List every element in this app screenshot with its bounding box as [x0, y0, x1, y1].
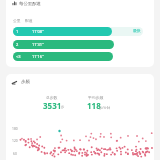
- staticText: 11'31": [32, 42, 44, 47]
- staticText: 步: [61, 105, 65, 109]
- button[interactable]: [13, 52, 113, 61]
- button[interactable]: Pace chart: [11, 0, 18, 7]
- staticText: 11'08": [32, 29, 44, 34]
- staticText: 每公里配速: [19, 1, 41, 7]
- staticText: 步/分钟: [99, 105, 111, 110]
- staticText: 平均步频: [88, 95, 104, 100]
- button[interactable]: [13, 40, 114, 49]
- staticText: 180: [12, 126, 18, 130]
- staticText: 最快: [133, 28, 141, 33]
- staticText: <3: [16, 54, 21, 59]
- button[interactable]: [13, 27, 112, 36]
- staticText: 11'16": [32, 54, 44, 59]
- button[interactable]: Cadence: [11, 78, 18, 86]
- staticText: 120: [12, 138, 18, 142]
- staticText: 118: [87, 100, 101, 111]
- staticText: 60: [13, 151, 17, 155]
- staticText: 公里: [13, 18, 21, 23]
- staticText: 1: [16, 29, 19, 34]
- staticText: 总步数: [46, 95, 58, 100]
- staticText: 2: [16, 42, 19, 47]
- staticText: 配速: [25, 18, 33, 23]
- staticText: 步频: [21, 79, 30, 85]
- staticText: 3531: [43, 100, 62, 111]
